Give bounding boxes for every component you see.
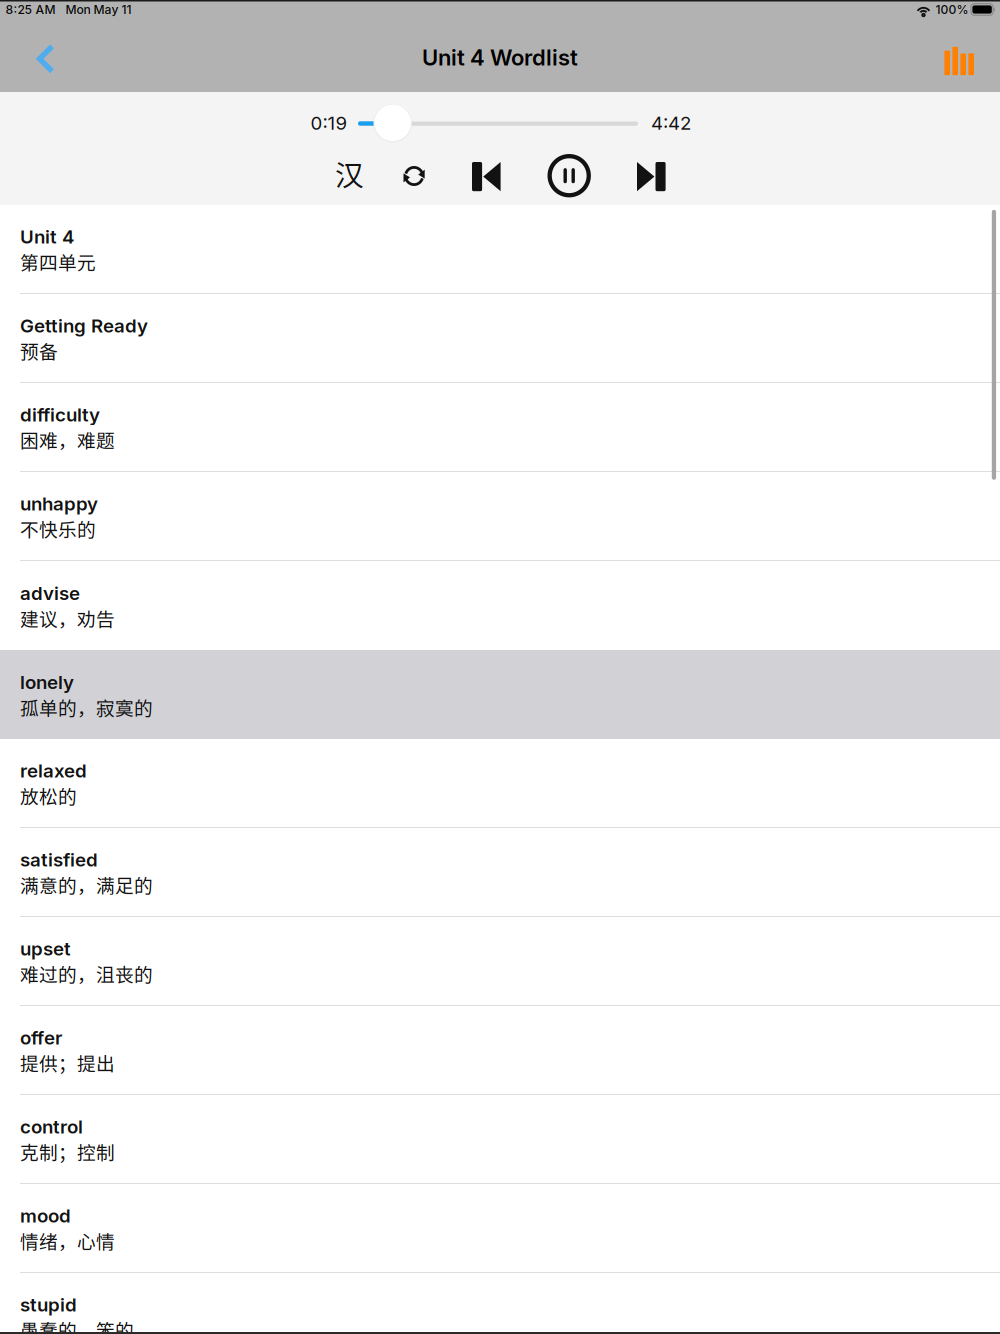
staticText: 放松的: [20, 782, 77, 809]
button[interactable]: relaxed: [0, 739, 1000, 828]
staticText: control: [20, 1115, 83, 1138]
button[interactable]: Repeat: [387, 149, 441, 203]
button[interactable]: Audio settings: [934, 36, 984, 86]
button[interactable]: offer: [0, 1006, 1000, 1095]
button[interactable]: Unit 4: [0, 205, 1000, 294]
staticText: 难过的，沮丧的: [20, 960, 153, 987]
staticText: 0:19: [310, 112, 347, 134]
button[interactable]: Previous: [459, 150, 513, 204]
staticText: Mon May 11: [65, 2, 131, 17]
staticText: Unit 4 Wordlist: [422, 44, 578, 71]
staticText: upset: [20, 937, 71, 960]
button[interactable]: Getting Ready: [0, 294, 1000, 383]
button[interactable]: upset: [0, 917, 1000, 1006]
staticText: stupid: [20, 1293, 77, 1316]
staticText: 100%: [935, 2, 968, 17]
staticText: 预备: [20, 337, 58, 364]
button[interactable]: control: [0, 1095, 1000, 1184]
staticText: 4:42: [651, 112, 691, 134]
staticText: 8:25 AM: [5, 2, 55, 17]
staticText: advise: [20, 582, 80, 604]
button[interactable]: stupid: [0, 1273, 1000, 1334]
staticText: 情绪，心情: [20, 1227, 115, 1254]
staticText: 孤单的，寂寞的: [20, 693, 153, 720]
staticText: 克制；控制: [20, 1138, 115, 1165]
staticText: 满意的，满足的: [20, 871, 153, 898]
staticText: 第四单元: [20, 248, 96, 275]
staticText: unhappy: [20, 492, 98, 515]
button[interactable]: Back: [18, 31, 74, 87]
staticText: 困难，难题: [20, 426, 115, 453]
button[interactable]: Next: [624, 150, 678, 204]
button[interactable]: Show Chinese: [323, 146, 377, 200]
button[interactable]: lonely: [0, 650, 1000, 739]
staticText: 汉: [335, 153, 364, 194]
staticText: 不快乐的: [20, 515, 96, 542]
staticText: Getting Ready: [20, 314, 148, 337]
staticText: satisfied: [20, 848, 98, 871]
staticText: 愚蠢的，笨的: [20, 1316, 134, 1334]
staticText: Unit 4: [20, 225, 74, 248]
staticText: 建议，劝告: [20, 604, 115, 631]
button[interactable]: difficulty: [0, 383, 1000, 472]
button[interactable]: mood: [0, 1184, 1000, 1273]
staticText: relaxed: [20, 759, 87, 782]
staticText: difficulty: [20, 403, 100, 426]
button[interactable]: Pause: [542, 149, 596, 203]
staticText: 提供；提出: [20, 1049, 115, 1076]
button[interactable]: unhappy: [0, 472, 1000, 561]
button[interactable]: satisfied: [0, 828, 1000, 917]
staticText: offer: [20, 1026, 62, 1049]
button[interactable]: advise: [0, 561, 1000, 650]
staticText: lonely: [20, 671, 74, 693]
staticText: mood: [20, 1204, 71, 1227]
